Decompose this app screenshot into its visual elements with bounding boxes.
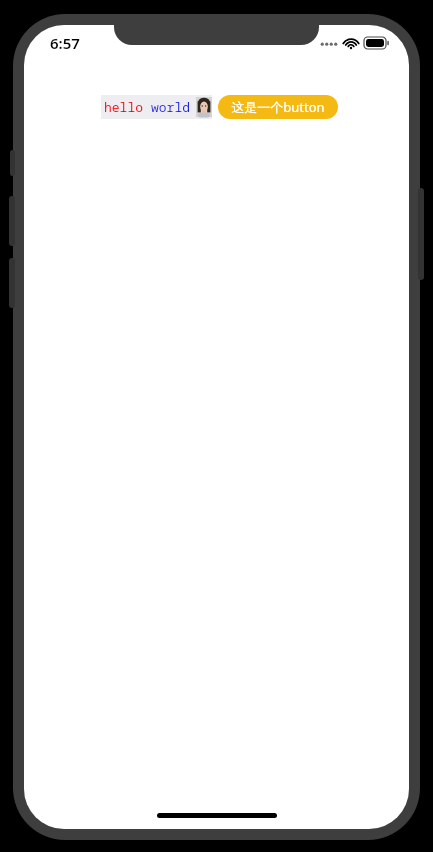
- staticText: 这是一个button: [231, 98, 325, 116]
- staticText: hello: [104, 98, 144, 116]
- staticText: world: [151, 98, 191, 116]
- button[interactable]: 这是一个button: [218, 95, 338, 119]
- other: Avatar photo: [196, 97, 212, 117]
- staticText: 6:57: [50, 33, 80, 53]
